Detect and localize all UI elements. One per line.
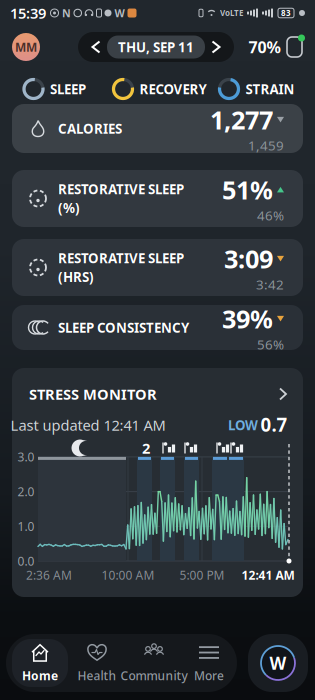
button[interactable]: Previous day <box>83 32 109 62</box>
staticText: 1,459 <box>248 136 284 154</box>
staticText: Health <box>77 667 116 683</box>
button[interactable]: STRESS MONITOR <box>12 368 303 597</box>
button[interactable]: RESTORATIVE SLEEP <box>12 170 303 227</box>
staticText: W <box>114 6 124 20</box>
staticText: STRAIN <box>245 80 294 98</box>
staticText: 3:42 <box>256 275 284 293</box>
staticText: 70% <box>248 36 280 58</box>
staticText: 51% <box>222 173 273 206</box>
staticText: 83 <box>281 8 291 18</box>
staticText: LOW <box>228 416 258 434</box>
staticText: (%) <box>58 199 80 217</box>
staticText: 2.0 <box>17 484 34 499</box>
staticText: Home <box>22 667 58 683</box>
staticText: 2 <box>142 438 150 458</box>
staticText: (HRS) <box>58 268 94 286</box>
staticText: SLEEP <box>50 80 86 98</box>
staticText: 12:41 AM <box>241 567 294 583</box>
button[interactable]: Profile <box>12 33 40 61</box>
staticText: VoLTE <box>220 8 243 18</box>
staticText: RESTORATIVE SLEEP <box>58 249 184 267</box>
button[interactable]: Device battery <box>248 36 303 58</box>
staticText: W <box>269 651 286 674</box>
button[interactable]: STRESS MONITOR <box>12 382 303 406</box>
staticText: 1.0 <box>17 518 34 534</box>
button[interactable]: RESTORATIVE SLEEP <box>12 239 303 296</box>
staticText: 0.7 <box>260 412 287 437</box>
staticText: 46% <box>257 206 284 224</box>
staticText: More <box>194 667 224 683</box>
staticText: 56% <box>257 335 284 353</box>
button[interactable]: STRAIN <box>219 79 294 98</box>
button[interactable]: Home <box>12 634 68 692</box>
staticText: 15:39 <box>10 3 46 23</box>
staticText: RESTORATIVE SLEEP <box>58 180 184 198</box>
staticText: 3:09 <box>224 242 273 275</box>
staticText: RECOVERY <box>139 80 206 98</box>
staticText: N <box>62 6 71 20</box>
staticText: 10:00 AM <box>101 567 154 583</box>
button[interactable]: Next day <box>203 32 229 62</box>
staticText: MM <box>15 39 37 55</box>
button[interactable]: RECOVERY <box>113 79 206 98</box>
staticText: 2:36 AM <box>26 567 72 583</box>
button[interactable]: SLEEP <box>24 79 86 98</box>
staticText: 1,277 <box>210 103 273 136</box>
staticText: Community <box>120 667 187 683</box>
button[interactable]: WHOOP Coach <box>248 634 308 692</box>
button[interactable]: Community <box>126 634 182 692</box>
staticText: Last updated 12:41 AM <box>10 415 165 435</box>
staticText: 3.0 <box>17 449 34 465</box>
button[interactable]: CALORIES <box>12 103 303 154</box>
button[interactable]: Health <box>69 634 125 692</box>
button[interactable]: More <box>181 634 237 692</box>
button[interactable]: THU, SEP 11 <box>107 35 205 58</box>
button[interactable]: SLEEP CONSISTENCY <box>12 302 303 353</box>
staticText: 5:00 PM <box>179 567 224 583</box>
staticText: THU, SEP 11 <box>118 38 194 56</box>
staticText: 0.0 <box>17 553 34 569</box>
staticText: 39% <box>222 302 273 335</box>
staticText: SLEEP CONSISTENCY <box>58 319 189 336</box>
staticText: CALORIES <box>58 120 122 137</box>
staticText: STRESS MONITOR <box>29 384 157 404</box>
